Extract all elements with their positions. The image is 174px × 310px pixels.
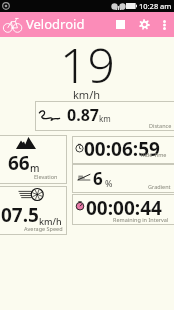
staticText: Distance (149, 122, 172, 129)
button[interactable]: 00:00:44 (72, 194, 174, 225)
staticText: km/h (39, 215, 62, 227)
staticText: km (99, 113, 111, 124)
staticText: Ride Time (141, 151, 167, 158)
staticText: 10:28 am (139, 1, 172, 11)
staticText: Gradient (148, 183, 171, 190)
staticText: m (30, 161, 40, 175)
button[interactable]: 6 (72, 164, 174, 193)
button[interactable]: Settings (132, 12, 156, 37)
staticText: km/h (73, 87, 101, 102)
staticText: Remaining in Interval (113, 216, 169, 223)
button[interactable]: Velodroid (2, 14, 23, 35)
staticText: 6 (93, 167, 103, 190)
button[interactable]: 66 (0, 135, 67, 184)
staticText: 0.87 (67, 104, 99, 126)
staticText: 00:00:44 (86, 195, 162, 221)
staticText: Velodroid (26, 15, 85, 33)
staticText: 07.5 (1, 202, 39, 228)
staticText: 00:06:59 (84, 136, 160, 162)
button[interactable]: Stop (108, 12, 132, 37)
staticText: % (105, 177, 113, 189)
staticText: Average Speed (24, 225, 63, 232)
staticText: Elevation (34, 173, 58, 180)
staticText: 19 (60, 32, 115, 97)
button[interactable]: 0.87 (35, 101, 174, 131)
staticText: 66 (8, 150, 30, 176)
button[interactable]: More options (156, 12, 172, 37)
button[interactable]: 00:06:59 (72, 136, 174, 164)
button[interactable]: 07.5 (0, 186, 67, 235)
